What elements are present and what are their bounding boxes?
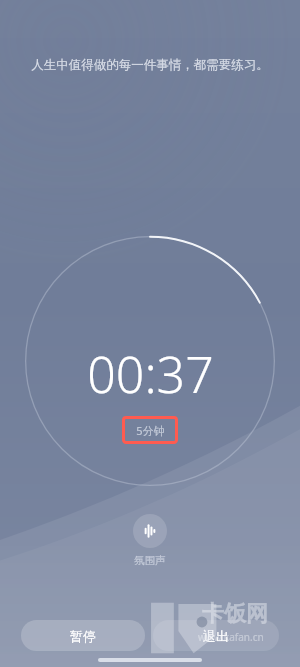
button[interactable]: 氛围声 [133,514,167,548]
button[interactable]: 5分钟 [122,416,178,444]
staticText: 氛围声 [134,554,166,567]
staticText: 5分钟 [136,423,165,438]
staticText: 00:37 [87,340,214,408]
staticText: 暂停 [70,628,96,644]
button[interactable]: 退出 [153,620,279,651]
staticText: 退出 [203,628,229,644]
staticText: 卡饭网 [202,600,268,628]
button[interactable]: 暂停 [21,620,145,651]
staticText: 人生中值得做的每一件事情，都需要练习。 [14,57,286,73]
staticText: www.kafan.cn [198,630,264,644]
